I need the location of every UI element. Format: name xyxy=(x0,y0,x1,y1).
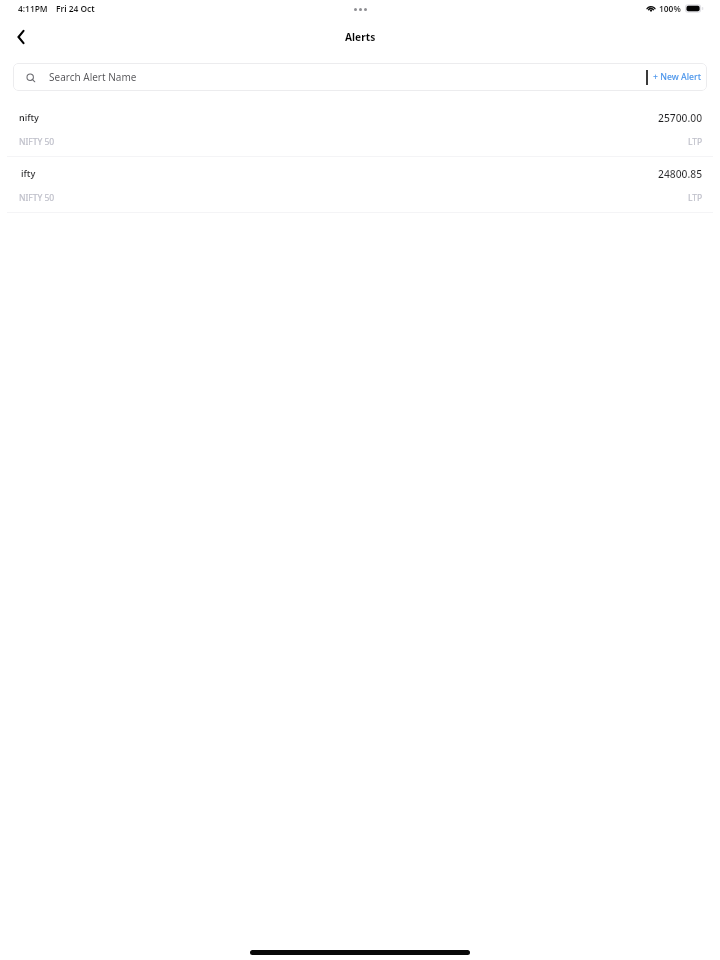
other: Search xyxy=(26,73,36,83)
staticText: NIFTY 50 xyxy=(19,136,55,148)
button[interactable]: ifty xyxy=(0,157,720,213)
staticText: LTP xyxy=(688,192,703,204)
staticText: 4:11PM xyxy=(18,3,48,14)
staticText: Fri 24 Oct xyxy=(56,3,95,14)
staticText: Search Alert Name xyxy=(49,70,137,84)
button[interactable]: Search xyxy=(13,63,646,91)
button[interactable]: nifty xyxy=(0,101,720,157)
staticText: 25700.00 xyxy=(658,111,703,125)
staticText: ifty xyxy=(21,167,36,179)
staticText: 24800.85 xyxy=(658,167,703,181)
staticText: + New Alert xyxy=(653,71,702,83)
staticText: 100% xyxy=(659,3,681,14)
staticText: NIFTY 50 xyxy=(19,192,55,204)
button[interactable]: + New Alert xyxy=(648,63,707,91)
staticText: nifty xyxy=(19,111,39,123)
staticText: Alerts xyxy=(345,30,376,44)
button[interactable]: Back xyxy=(7,23,35,51)
staticText: LTP xyxy=(688,136,703,148)
